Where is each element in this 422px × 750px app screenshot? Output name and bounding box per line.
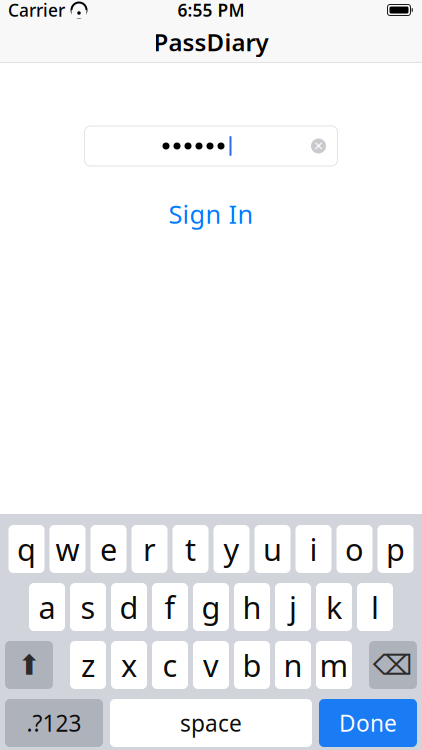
staticText: f <box>164 587 175 627</box>
staticText: v <box>203 645 219 685</box>
button[interactable]: j <box>275 583 311 631</box>
staticText: .?123 <box>26 708 81 738</box>
staticText: q <box>17 529 36 569</box>
button[interactable]: k <box>316 583 352 631</box>
button[interactable]: Clear text <box>305 133 331 159</box>
button[interactable]: e <box>90 525 126 573</box>
staticText: k <box>326 587 342 627</box>
staticText: c <box>162 645 177 685</box>
button[interactable]: u <box>254 525 290 573</box>
staticText: Sign In <box>168 197 253 231</box>
staticText: j <box>289 587 297 627</box>
staticText: r <box>143 529 156 569</box>
button[interactable]: f <box>152 583 188 631</box>
staticText: 6:55 PM <box>177 0 244 21</box>
button[interactable]: i <box>295 525 331 573</box>
button[interactable]: .?123 <box>5 699 103 747</box>
staticText: n <box>283 645 302 685</box>
button[interactable]: w <box>49 525 85 573</box>
button[interactable]: Delete <box>369 641 417 689</box>
button[interactable]: x <box>111 641 147 689</box>
staticText: i <box>309 529 317 569</box>
staticText: ⬆ <box>17 649 40 681</box>
staticText: d <box>119 587 138 627</box>
staticText: Carrier <box>8 0 65 21</box>
button[interactable]: b <box>234 641 270 689</box>
staticText: w <box>55 529 79 569</box>
staticText: p <box>386 529 405 569</box>
staticText: Done <box>339 708 397 738</box>
button[interactable]: space <box>110 699 312 747</box>
staticText: u <box>263 529 282 569</box>
staticText: y <box>223 529 239 569</box>
button[interactable]: p <box>377 525 413 573</box>
button[interactable]: z <box>70 641 106 689</box>
button[interactable]: Shift <box>5 641 53 689</box>
staticText: b <box>242 645 261 685</box>
button[interactable]: h <box>234 583 270 631</box>
staticText: PassDiary <box>153 26 268 58</box>
staticText: z <box>81 645 95 685</box>
button[interactable]: q <box>8 525 44 573</box>
button[interactable]: Done <box>319 699 417 747</box>
button[interactable]: n <box>275 641 311 689</box>
staticText: a <box>38 587 55 627</box>
staticText: g <box>201 587 220 627</box>
button[interactable]: o <box>336 525 372 573</box>
staticText: ⌫ <box>373 649 413 681</box>
button[interactable]: c <box>152 641 188 689</box>
button[interactable]: v <box>193 641 229 689</box>
staticText: o <box>345 529 364 569</box>
button[interactable]: g <box>193 583 229 631</box>
staticText: space <box>180 708 242 738</box>
button[interactable]: a <box>29 583 65 631</box>
button[interactable]: t <box>172 525 208 573</box>
staticText: t <box>185 529 196 569</box>
button[interactable]: r <box>131 525 167 573</box>
staticText: e <box>100 529 117 569</box>
button[interactable]: l <box>357 583 393 631</box>
button[interactable]: y <box>213 525 249 573</box>
staticText: m <box>319 645 348 685</box>
staticText: x <box>121 645 137 685</box>
button[interactable]: Sign In <box>151 200 271 228</box>
staticText: ✕ <box>313 139 323 153</box>
button[interactable]: s <box>70 583 106 631</box>
button[interactable]: m <box>316 641 352 689</box>
button[interactable]: d <box>111 583 147 631</box>
staticText: h <box>242 587 261 627</box>
staticText: s <box>80 587 95 627</box>
staticText: l <box>371 587 379 627</box>
